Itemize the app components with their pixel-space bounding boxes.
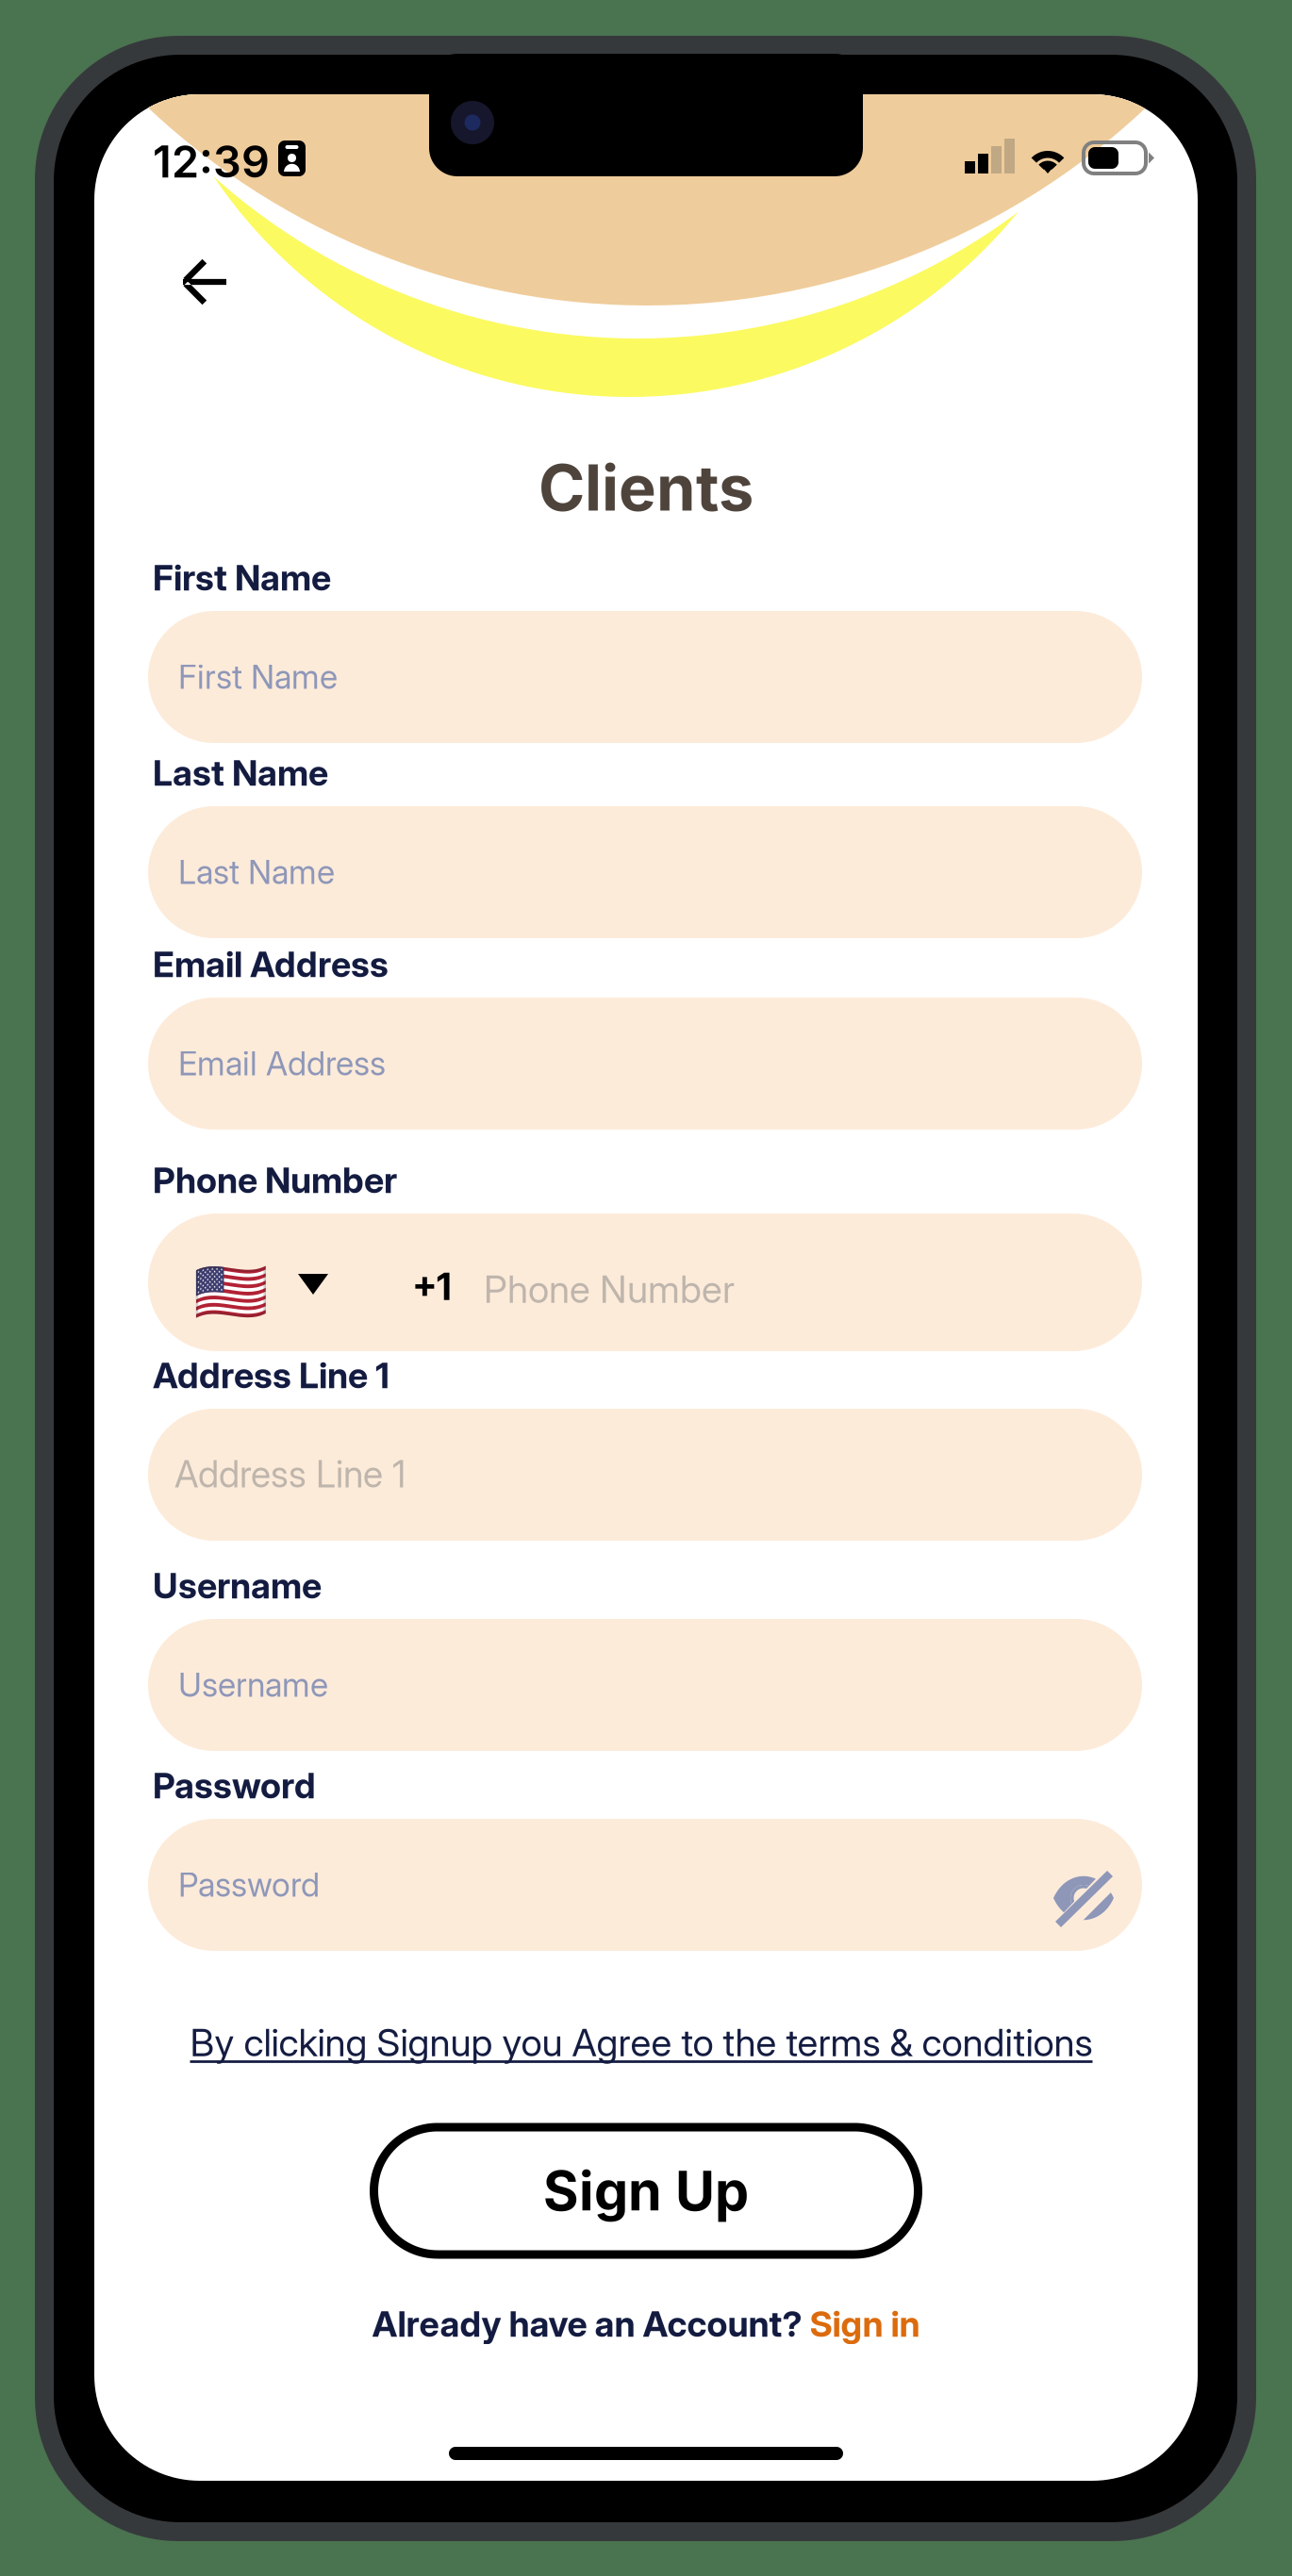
staticText: Email Address (153, 943, 389, 986)
staticText: Sign Up (543, 2158, 749, 2224)
staticText: Already have an Account? (372, 2303, 810, 2345)
staticText: Sign in (810, 2303, 920, 2345)
staticText: Phone Number (484, 1266, 735, 1312)
staticText: By clicking Signup you Agree to the term… (190, 2020, 1093, 2065)
button[interactable]: First Name (148, 611, 1142, 743)
button[interactable]: Show password (1028, 1849, 1139, 1947)
button[interactable]: Email Address (148, 998, 1142, 1130)
button[interactable]: Username (148, 1619, 1142, 1751)
button[interactable]: Back (149, 228, 260, 336)
staticText: +1 (412, 1263, 452, 1309)
button[interactable]: Last Name (148, 806, 1142, 938)
staticText: Address Line 1 (153, 1354, 389, 1397)
staticText: Email Address (178, 1044, 386, 1083)
button[interactable]: Address Line 1 (148, 1409, 1142, 1541)
staticText: First Name (178, 657, 338, 697)
staticText: Username (178, 1665, 328, 1705)
staticText: Last Name (153, 751, 328, 794)
staticText: First Name (153, 556, 331, 599)
staticText: Clients (538, 450, 754, 526)
button[interactable]: Already have an Account? (372, 2295, 920, 2353)
staticText: Address Line 1 (174, 1452, 406, 1496)
button[interactable]: Sign Up (374, 2127, 918, 2254)
staticText: Username (153, 1564, 322, 1607)
staticText: 12:39 (153, 135, 270, 188)
button[interactable]: By clicking Signup you Agree to the term… (190, 2010, 1093, 2075)
staticText: Password (178, 1865, 320, 1905)
staticText: 🇺🇸 (193, 1257, 269, 1328)
staticText: Password (153, 1764, 316, 1807)
staticText: Phone Number (153, 1159, 397, 1201)
button[interactable]: 🇺🇸 (148, 1214, 1142, 1351)
staticText: Last Name (178, 852, 335, 892)
